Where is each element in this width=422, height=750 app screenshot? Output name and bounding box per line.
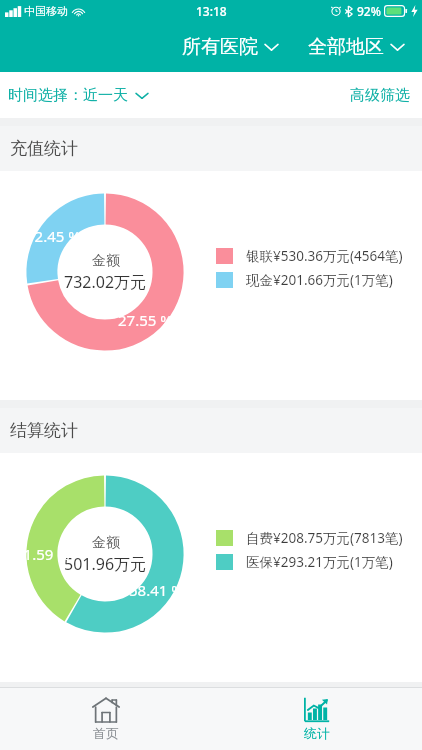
staticText: 银联¥530.36万元(4564笔) (246, 247, 403, 265)
staticText: 金额 (92, 534, 120, 552)
button[interactable]: 时间选择：近一天 (0, 80, 158, 111)
button[interactable]: 统计 (281, 690, 352, 748)
staticText: 92% (357, 3, 381, 19)
staticText: 统计 (304, 725, 330, 741)
staticText: 732.02万元 (64, 271, 147, 293)
staticText: 72.45 % (26, 226, 81, 246)
staticText: 金额 (92, 252, 120, 270)
staticText: 58.41 % (129, 580, 184, 600)
staticText: 中国移动 (24, 4, 68, 18)
button[interactable]: 结算统计 (0, 408, 422, 453)
button[interactable]: 所有医院 (180, 29, 280, 65)
staticText: 充值统计 (10, 138, 78, 159)
staticText: 501.96万元 (64, 553, 147, 575)
button[interactable]: 全部地区 (306, 29, 406, 65)
button[interactable]: 高级筛选 (338, 78, 422, 113)
staticText: 13:18 (196, 3, 227, 19)
staticText: 41.59 % (15, 544, 70, 564)
staticText: 首页 (93, 725, 119, 741)
staticText: 医保¥293.21万元(1万笔) (246, 553, 393, 571)
staticText: 全部地区 (308, 35, 384, 59)
button[interactable]: 充值统计 (0, 126, 422, 171)
staticText: 时间选择：近一天 (8, 86, 128, 105)
staticText: 自费¥208.75万元(7813笔) (246, 529, 403, 547)
staticText: 现金¥201.66万元(1万笔) (246, 271, 393, 289)
staticText: 高级筛选 (350, 86, 410, 105)
staticText: 结算统计 (10, 420, 78, 441)
staticText: 所有医院 (182, 35, 258, 59)
button[interactable]: 首页 (70, 690, 142, 748)
staticText: 27.55 % (118, 310, 173, 330)
